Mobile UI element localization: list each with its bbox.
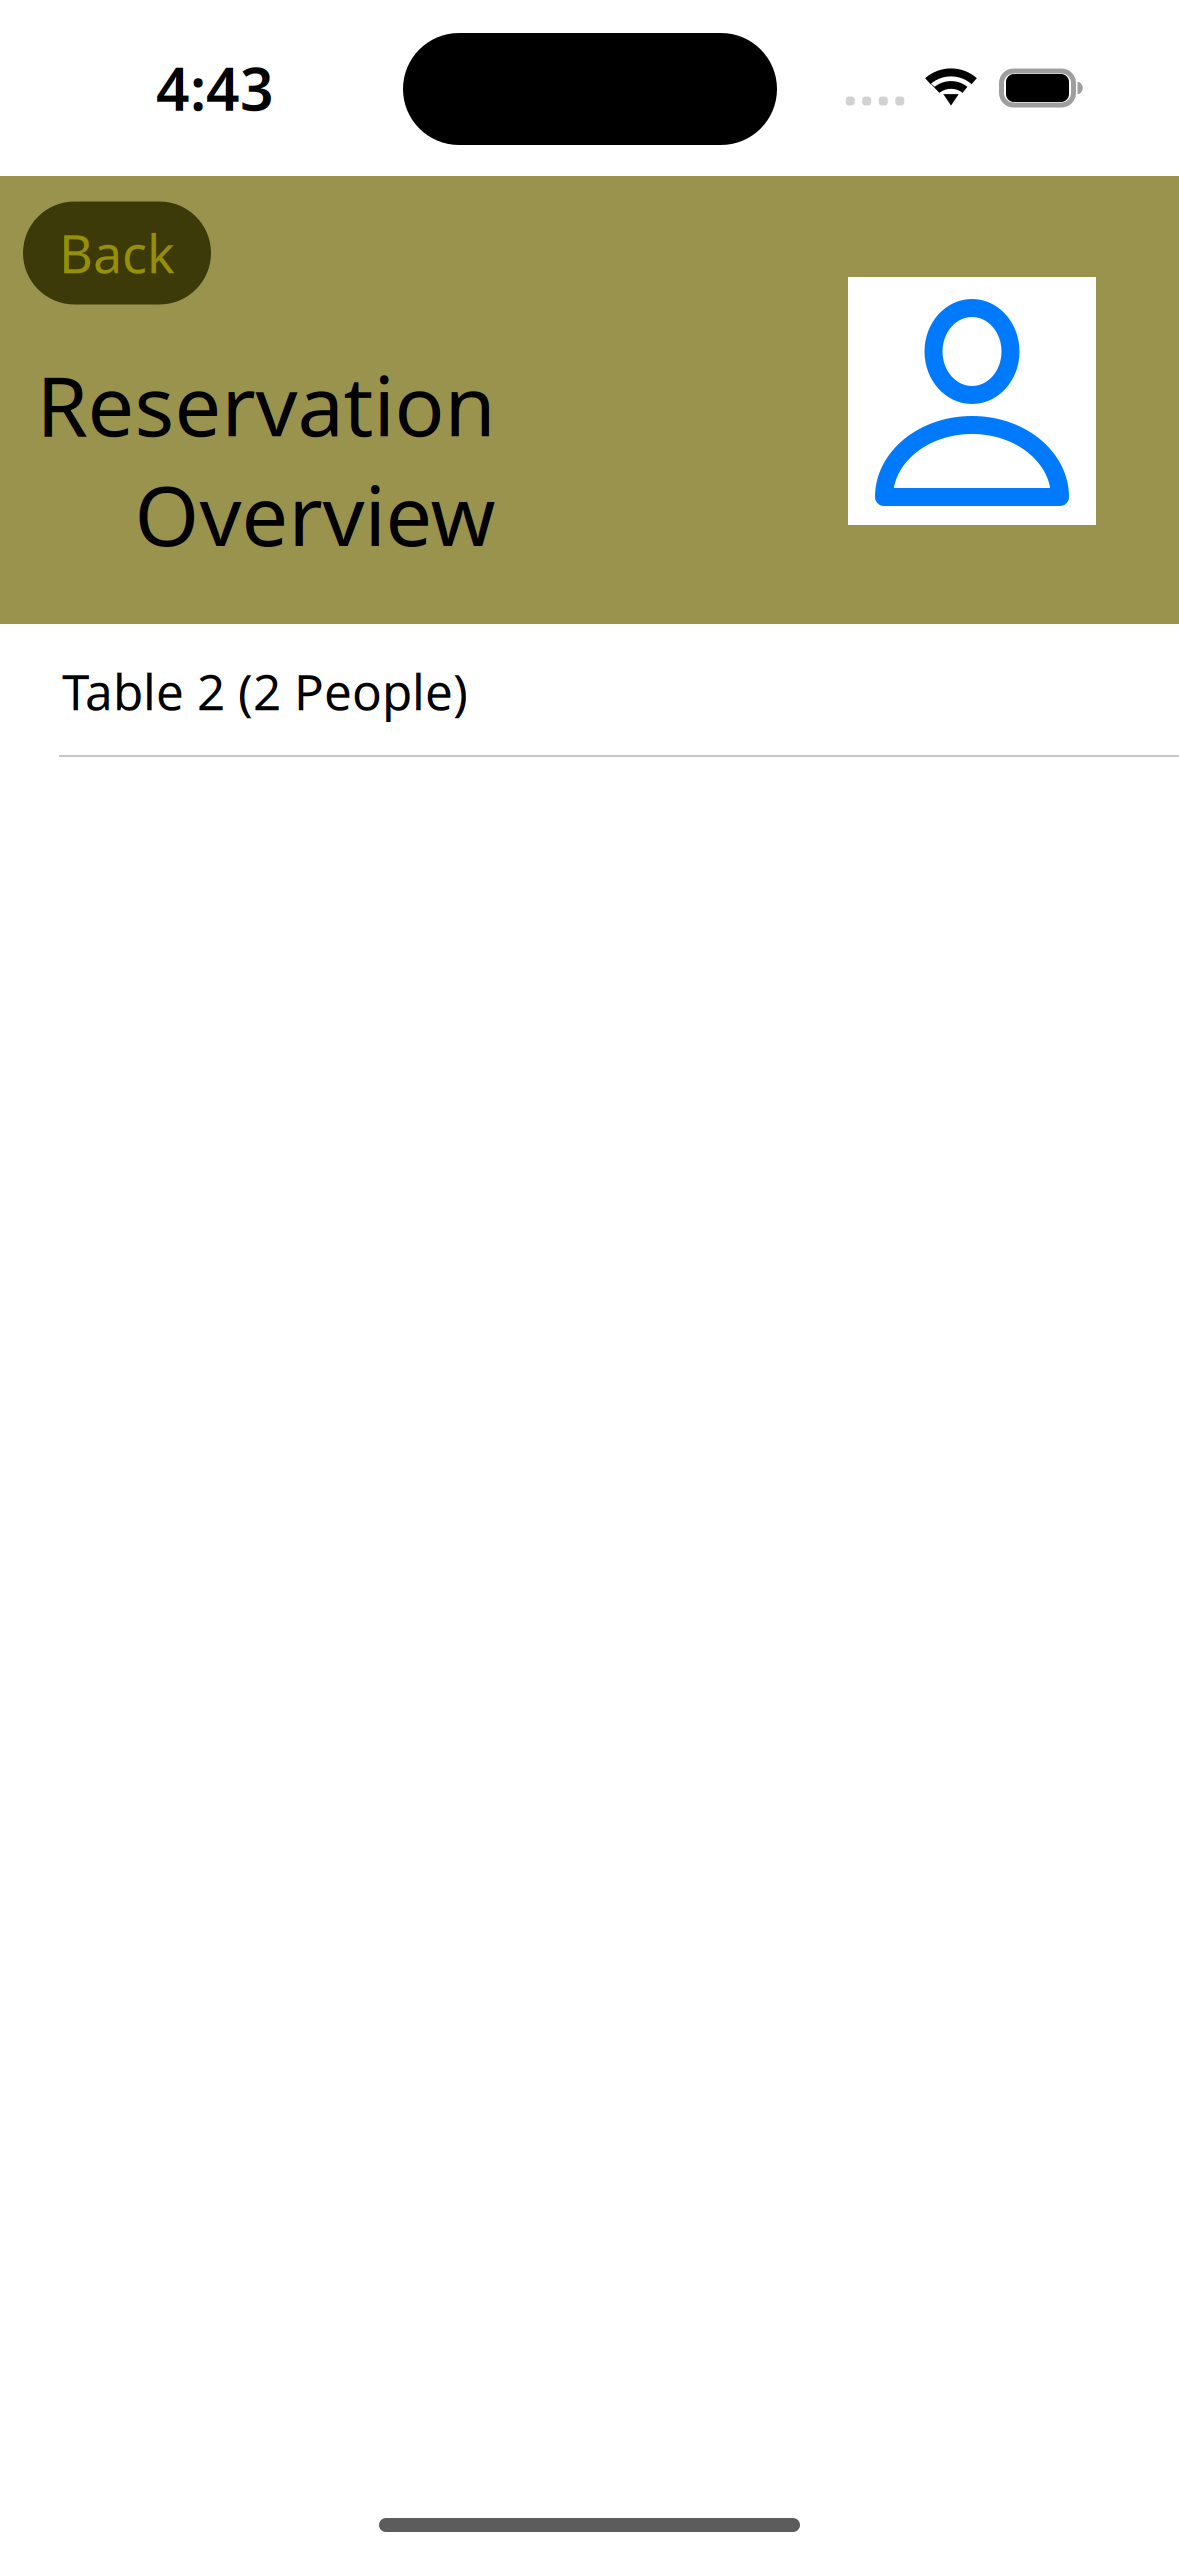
staticText: 4:43 bbox=[156, 49, 274, 127]
button[interactable]: Account bbox=[848, 277, 1096, 525]
button[interactable]: Table 2 (2 People) bbox=[0, 624, 1179, 757]
staticText: Table 2 (2 People) bbox=[62, 658, 468, 724]
staticText: Reservation Overview bbox=[36, 349, 495, 569]
staticText: Back bbox=[59, 218, 175, 288]
button[interactable]: Back bbox=[23, 201, 211, 304]
